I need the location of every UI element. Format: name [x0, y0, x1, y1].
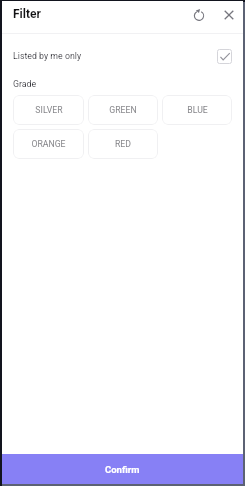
staticText: Filter	[13, 7, 41, 21]
staticText: ORANGE	[31, 139, 66, 149]
staticText: RED	[115, 139, 131, 149]
staticText: Confirm	[105, 464, 140, 475]
button[interactable]: SILVER	[13, 95, 84, 125]
staticText: BLUE	[187, 105, 208, 115]
button[interactable]: BLUE	[162, 95, 232, 125]
button[interactable]: Close	[213, 0, 243, 29]
staticText: GREEN	[109, 105, 137, 115]
button[interactable]: ORANGE	[13, 129, 84, 159]
button[interactable]: RED	[88, 129, 158, 159]
staticText: Grade	[13, 79, 37, 89]
button[interactable]: Reset filters	[183, 0, 213, 29]
button[interactable]: Listed by me only	[13, 47, 232, 65]
staticText: Listed by me only	[13, 51, 82, 61]
button[interactable]: Confirm	[2, 454, 243, 484]
button[interactable]: GREEN	[88, 95, 158, 125]
staticText: SILVER	[35, 105, 63, 115]
